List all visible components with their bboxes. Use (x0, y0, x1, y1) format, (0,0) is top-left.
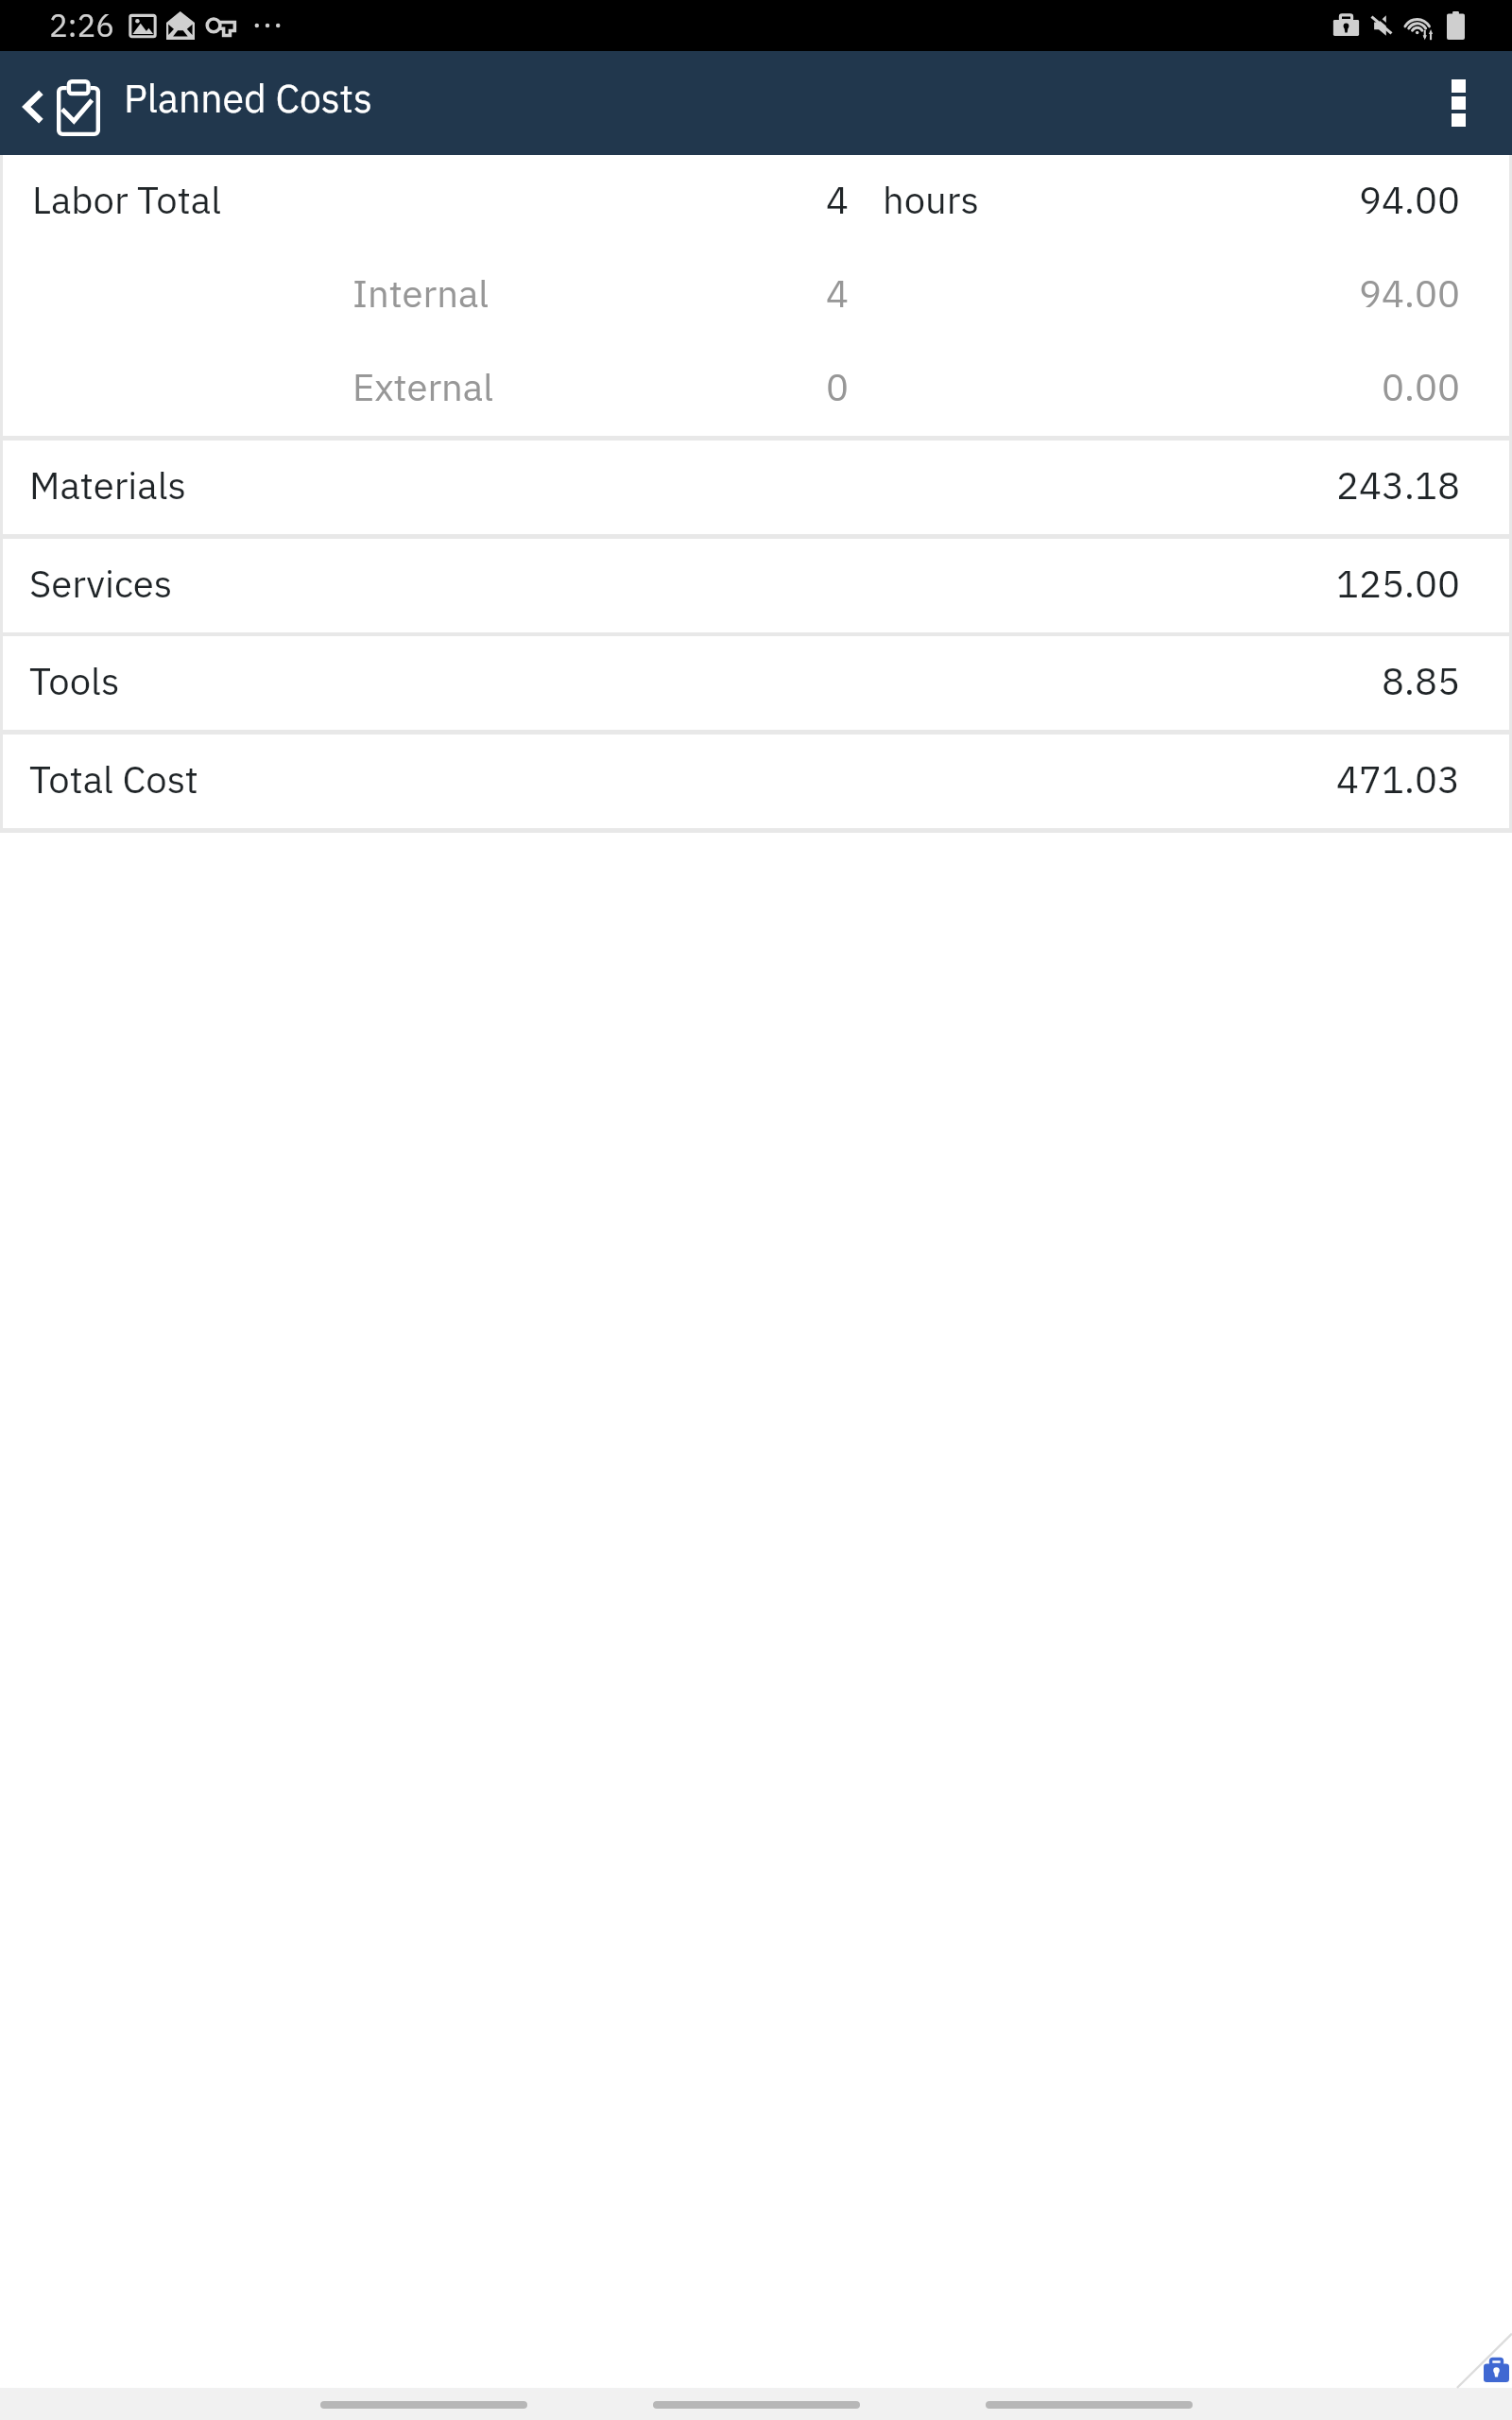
staticText: 471.03 (1336, 754, 1460, 804)
staticText: Internal (352, 268, 490, 318)
staticText: External (352, 362, 494, 411)
staticText: 94.00 (1359, 175, 1460, 224)
button[interactable]: Total Cost (3, 735, 1509, 828)
staticText: 2:26 (49, 5, 115, 45)
staticText: 4 (826, 175, 849, 224)
staticText: Total Cost (29, 754, 198, 804)
button[interactable]: Home (653, 2401, 860, 2409)
button[interactable]: External (3, 342, 1509, 436)
staticText: hours (883, 175, 979, 224)
staticText: Labor Total (32, 175, 222, 224)
staticText: 94.00 (1359, 268, 1460, 318)
button[interactable]: More options (1408, 51, 1512, 155)
staticText: 0.00 (1382, 362, 1460, 411)
button[interactable]: Internal (3, 249, 1509, 342)
staticText: Tools (29, 656, 120, 705)
staticText: 4 (826, 268, 849, 318)
button[interactable]: Recents (986, 2401, 1193, 2409)
staticText: 0 (826, 362, 849, 411)
staticText: Planned Costs (124, 73, 372, 123)
staticText: Materials (29, 460, 187, 510)
staticText: 8.85 (1382, 656, 1460, 705)
staticText: 125.00 (1336, 559, 1460, 608)
button[interactable]: Tools (3, 636, 1509, 730)
button[interactable]: Back (0, 51, 108, 155)
button[interactable]: Back (320, 2401, 527, 2409)
staticText: 243.18 (1336, 460, 1460, 510)
button[interactable]: Services (3, 539, 1509, 632)
button[interactable]: Materials (3, 441, 1509, 534)
button[interactable]: Labor Total (3, 155, 1509, 249)
staticText: Services (29, 559, 173, 608)
